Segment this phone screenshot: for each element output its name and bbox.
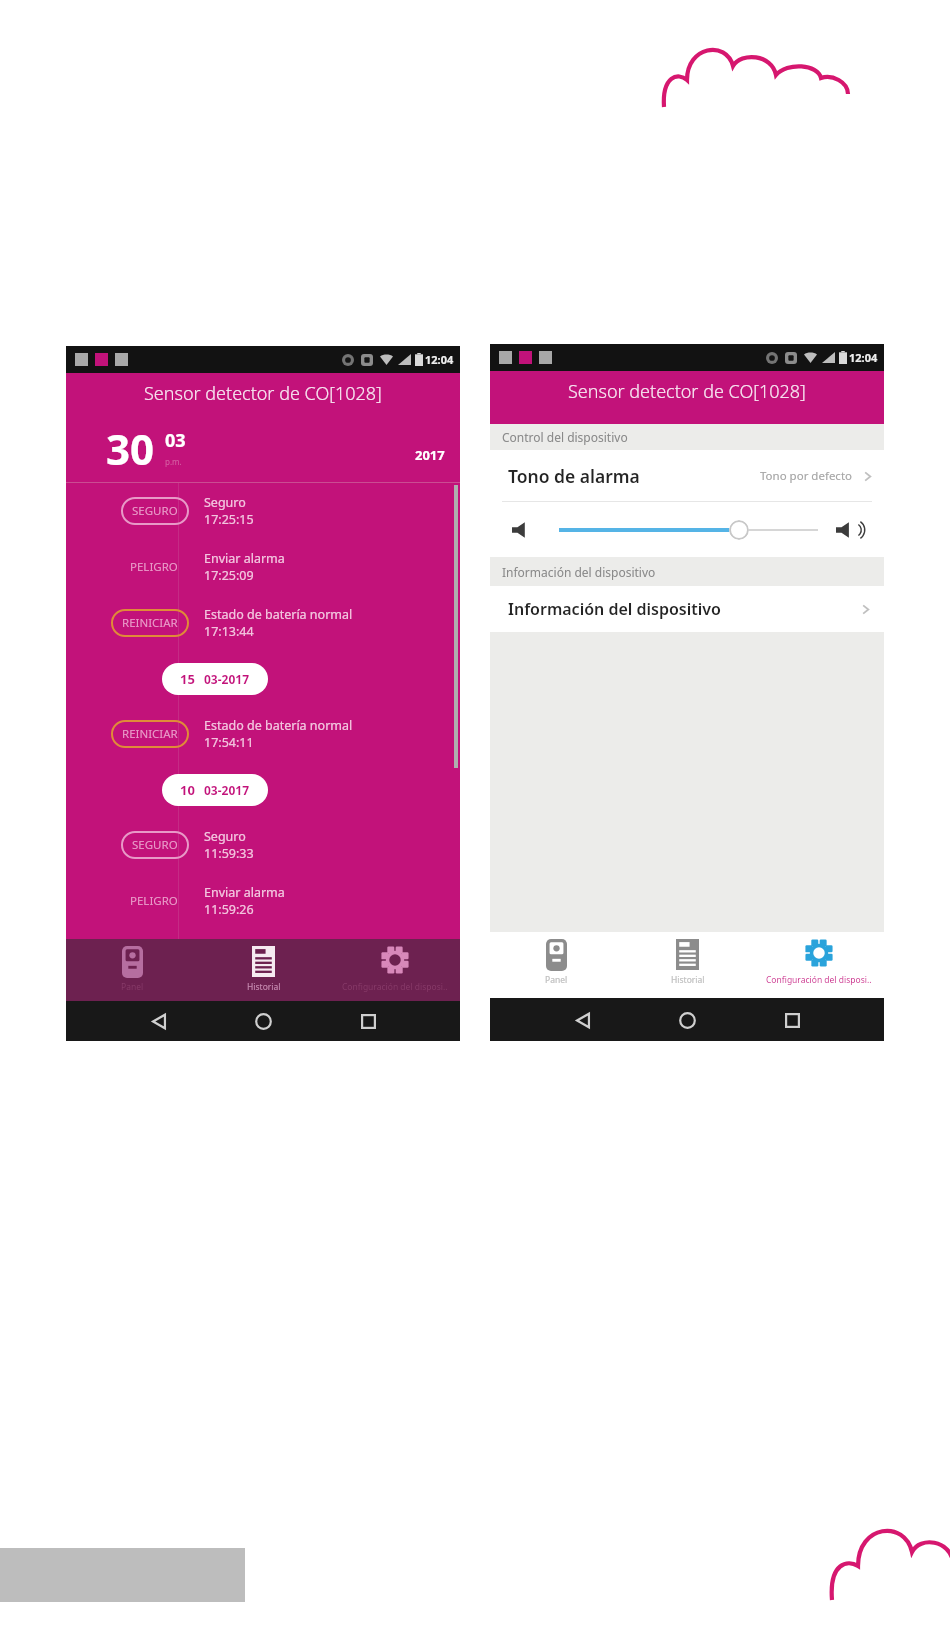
staticText: Configuración del disposi.. [342,981,448,993]
button[interactable]: Home [675,1008,699,1032]
staticText: p.m. [165,456,182,467]
button[interactable]: Tono de alarma [490,450,884,502]
staticText: Estado de batería normal [204,606,353,623]
button[interactable]: Panel [66,939,198,1001]
staticText: Sensor detector de CO[1028] [144,381,382,406]
staticText: 15 [180,670,195,688]
button[interactable]: Volumen [729,520,749,540]
staticText: 11:59:26 [204,901,254,918]
staticText: REINICIAR [122,726,178,742]
staticText: Tono de alarma [508,464,640,488]
staticText: 17:25:15 [204,511,254,528]
staticText: Tono por defecto [760,468,852,484]
staticText: Panel [121,981,144,993]
button[interactable]: PELIGRO [66,539,460,595]
staticText: Enviar alarma [204,550,285,567]
staticText: Configuración del disposi.. [766,974,872,986]
staticText: Seguro [204,828,246,845]
staticText: 2017 [415,446,445,464]
button[interactable]: PELIGRO [66,873,460,929]
staticText: Sensor detector de CO[1028] [568,379,806,404]
button[interactable]: 15 [162,663,268,695]
button[interactable]: Recents [356,1009,380,1033]
staticText: 12:04 [849,350,878,365]
staticText: SEGURO [132,837,178,853]
staticText: 03-2017 [204,671,250,687]
staticText: 17:13:44 [204,623,254,640]
staticText: Historial [671,974,705,986]
staticText: 12:04 [425,352,454,367]
button[interactable]: Back [147,1009,171,1033]
staticText: PELIGRO [130,559,178,575]
button[interactable]: Home [251,1009,275,1033]
button[interactable]: REINICIAR [66,706,460,762]
button[interactable]: SEGURO [66,817,460,873]
button[interactable]: 10 [162,774,268,806]
button[interactable]: Panel [490,932,622,998]
button[interactable]: Historial [198,939,329,1001]
staticText: PELIGRO [130,893,178,909]
button[interactable]: Recents [780,1008,804,1032]
button[interactable]: Información del dispositivo [490,586,884,632]
staticText: Estado de batería normal [204,717,353,734]
staticText: Enviar alarma [204,884,285,901]
staticText: SEGURO [132,503,178,519]
staticText: Información del dispositivo [508,598,721,620]
button[interactable]: REINICIAR [66,595,460,651]
button[interactable]: Historial [622,932,753,998]
staticText: 10 [180,781,195,799]
staticText: Historial [247,981,281,993]
staticText: 30 [106,420,155,476]
staticText: 03-2017 [204,782,250,798]
staticText: 17:25:09 [204,567,254,584]
button[interactable]: SEGURO [66,483,460,539]
button[interactable]: Configuración del disposi.. [753,932,884,998]
staticText: Información del dispositivo [502,564,656,580]
staticText: Control del dispositivo [502,429,628,445]
staticText: REINICIAR [122,615,178,631]
staticText: 11:59:33 [204,845,254,862]
staticText: 17:54:11 [204,734,254,751]
staticText: Seguro [204,494,246,511]
staticText: Panel [545,974,568,986]
button[interactable]: Configuración del disposi.. [329,939,460,1001]
button[interactable]: Back [571,1008,595,1032]
staticText: 03 [165,428,186,453]
